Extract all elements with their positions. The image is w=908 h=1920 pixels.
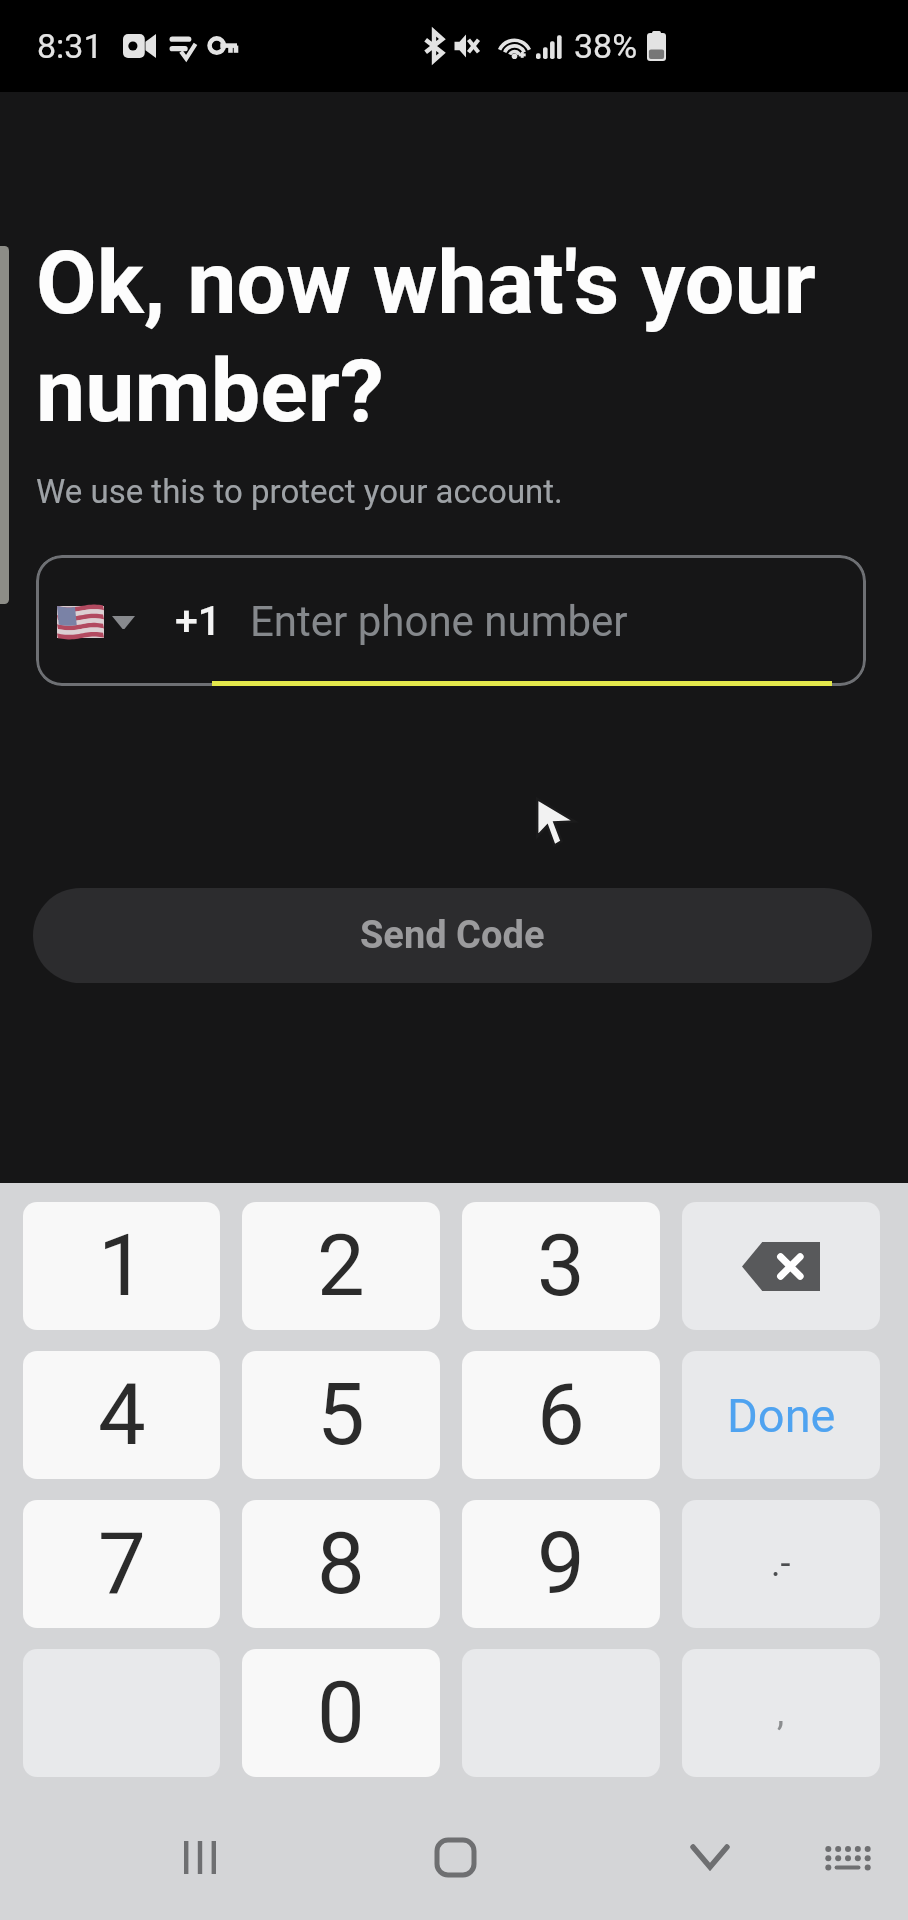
staticText: number? <box>36 339 384 442</box>
button[interactable]: Backspace <box>682 1202 880 1330</box>
button[interactable]: Hide keyboard <box>642 1816 778 1898</box>
staticText: Send Code <box>360 913 545 958</box>
staticText: 6 <box>537 1365 585 1465</box>
staticText: We use this to protect your account. <box>36 472 563 511</box>
button[interactable]: 7 <box>23 1500 220 1628</box>
staticText: Enter phone number <box>250 597 628 646</box>
staticText: Ok, now what's your <box>36 231 816 334</box>
button[interactable]: Done <box>682 1351 880 1479</box>
button[interactable]: Home <box>387 1816 523 1898</box>
staticText: 7 <box>98 1514 146 1614</box>
staticText: 1 <box>98 1216 146 1316</box>
button[interactable]: Change keyboard <box>790 1816 906 1898</box>
button[interactable]: +1 <box>36 555 866 686</box>
staticText: +1 <box>175 597 222 645</box>
button[interactable]: Send Code <box>33 888 872 983</box>
button[interactable]: 1 <box>23 1202 220 1330</box>
staticText: 5 <box>317 1365 365 1465</box>
button[interactable]: 0 <box>242 1649 440 1777</box>
staticText: 2 <box>317 1216 365 1316</box>
staticText: 8:31 <box>37 26 103 66</box>
button[interactable]: 3 <box>462 1202 660 1330</box>
button[interactable]: 8 <box>242 1500 440 1628</box>
button[interactable]: Recent apps <box>132 1816 268 1898</box>
button[interactable]: Comma <box>682 1649 880 1777</box>
button[interactable]: 6 <box>462 1351 660 1479</box>
staticText: .- <box>771 1543 791 1585</box>
staticText: 38% <box>574 26 638 66</box>
button[interactable]: .- <box>682 1500 880 1628</box>
button[interactable]: 2 <box>242 1202 440 1330</box>
staticText: 8 <box>317 1514 365 1614</box>
staticText: Done <box>727 1388 836 1443</box>
staticText: 9 <box>537 1514 585 1614</box>
button[interactable]: 9 <box>462 1500 660 1628</box>
staticText: 4 <box>98 1365 146 1465</box>
button[interactable]: 5 <box>242 1351 440 1479</box>
staticText: , <box>777 1692 785 1734</box>
button[interactable]: 4 <box>23 1351 220 1479</box>
staticText: 3 <box>537 1216 585 1316</box>
staticText: 0 <box>317 1663 365 1763</box>
